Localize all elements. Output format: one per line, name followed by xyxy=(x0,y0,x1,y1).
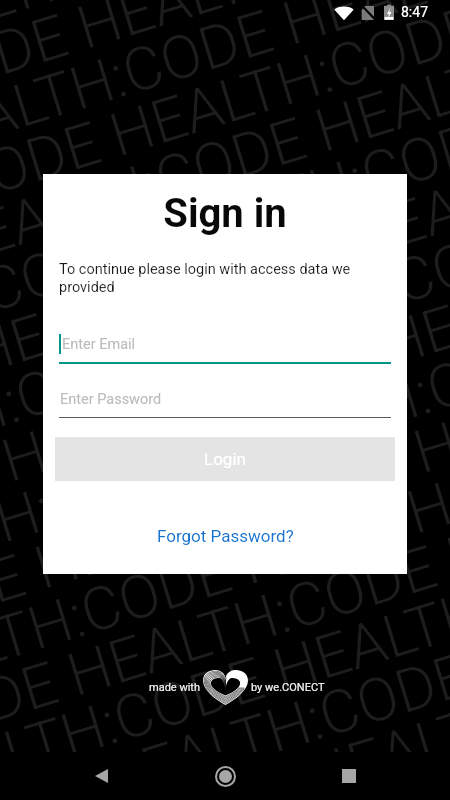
staticText: Enter Email xyxy=(62,336,136,353)
staticText: To continue please login with access dat… xyxy=(59,261,359,295)
staticText: made with xyxy=(149,681,200,694)
button[interactable]: Recent apps xyxy=(325,752,373,800)
button[interactable]: Home xyxy=(201,752,249,800)
staticText: Sign in xyxy=(43,190,407,237)
button[interactable]: Forgot Password? xyxy=(145,522,306,550)
staticText: 8:47 xyxy=(401,4,428,20)
button[interactable]: Enter Email xyxy=(59,332,391,364)
staticText: Forgot Password? xyxy=(157,526,294,546)
staticText: Enter Password xyxy=(60,391,162,408)
button[interactable]: Back xyxy=(77,752,125,800)
staticText: by we.CONECT xyxy=(251,681,325,694)
button[interactable]: Enter Password xyxy=(59,387,391,418)
staticText: Login xyxy=(204,449,246,469)
